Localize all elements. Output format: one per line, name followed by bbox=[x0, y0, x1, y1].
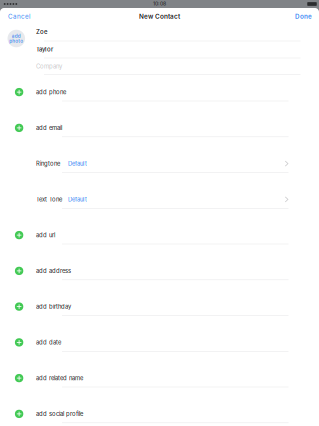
button[interactable]: Taylor bbox=[36, 42, 300, 57]
staticText: Zoe bbox=[36, 28, 48, 35]
button[interactable]: Cancel bbox=[8, 8, 38, 25]
button[interactable]: add url bbox=[15, 228, 288, 242]
staticText: Company bbox=[36, 63, 62, 70]
staticText: add url bbox=[36, 232, 55, 239]
staticText: 10:08 bbox=[153, 1, 166, 7]
staticText: add address bbox=[36, 267, 71, 274]
staticText: add phone bbox=[36, 89, 66, 96]
button[interactable]: add phone bbox=[15, 85, 288, 99]
staticText: add email bbox=[36, 124, 62, 131]
staticText: add bbox=[12, 33, 21, 39]
staticText: add related name bbox=[36, 375, 83, 382]
button[interactable]: add social profile bbox=[15, 407, 288, 421]
staticText: add date bbox=[36, 339, 61, 346]
staticText: add social profile bbox=[36, 410, 83, 417]
staticText: Default bbox=[68, 196, 87, 203]
staticText: Ringtone bbox=[36, 160, 60, 167]
button[interactable]: Company bbox=[36, 59, 300, 74]
staticText: Text Tone bbox=[36, 196, 62, 203]
staticText: Default bbox=[68, 160, 87, 167]
button[interactable]: Zoe bbox=[36, 24, 300, 39]
button[interactable]: Done bbox=[286, 8, 312, 25]
button[interactable]: add email bbox=[15, 121, 288, 135]
button[interactable]: Text Tone bbox=[36, 192, 290, 206]
button[interactable]: add birthday bbox=[15, 300, 288, 314]
button[interactable]: add related name bbox=[15, 371, 288, 385]
staticText: photo bbox=[9, 38, 23, 44]
staticText: New Contact bbox=[139, 13, 180, 20]
button[interactable]: Add photo bbox=[7, 30, 25, 47]
button[interactable]: add date bbox=[15, 335, 288, 349]
staticText: Cancel bbox=[8, 13, 31, 20]
staticText: Done bbox=[295, 13, 312, 20]
staticText: Taylor bbox=[36, 46, 53, 53]
button[interactable]: Ringtone bbox=[36, 157, 290, 171]
staticText: add birthday bbox=[36, 303, 71, 310]
button[interactable]: add address bbox=[15, 264, 288, 278]
